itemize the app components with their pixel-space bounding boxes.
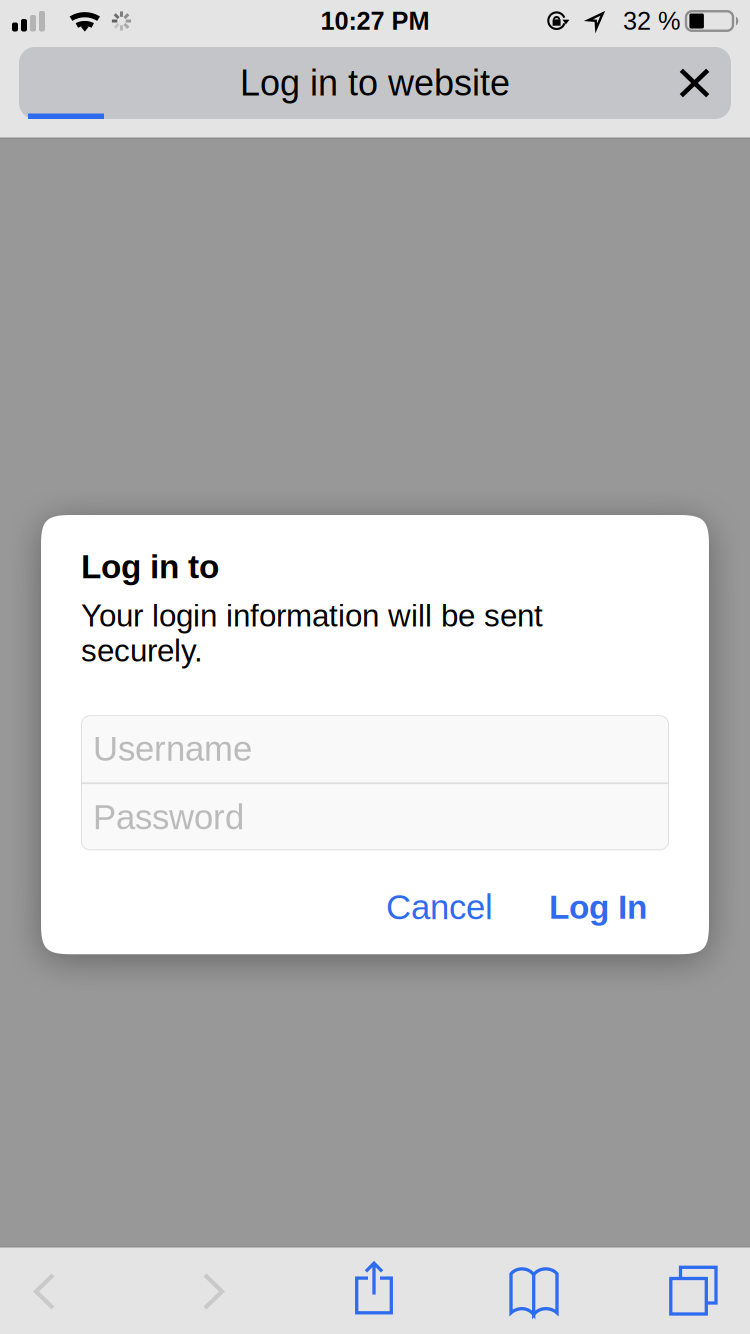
staticText: Cancel bbox=[386, 888, 493, 927]
button[interactable]: Forward bbox=[0, 1246, 750, 1334]
button[interactable]: Log in to website bbox=[0, 47, 750, 119]
button[interactable]: Tabs bbox=[0, 1246, 750, 1334]
staticText: 32 % bbox=[623, 7, 681, 35]
staticText: Log in to website bbox=[240, 63, 510, 103]
button[interactable]: Back bbox=[0, 1246, 750, 1334]
staticText: Log In bbox=[549, 889, 647, 926]
staticText: Your login information will be sent secu… bbox=[81, 598, 543, 668]
staticText: Log in to bbox=[81, 548, 219, 585]
button[interactable]: Share bbox=[0, 1246, 750, 1334]
button[interactable]: Cancel bbox=[364, 888, 527, 927]
staticText: Username bbox=[93, 729, 252, 768]
staticText: 10:27 PM bbox=[320, 7, 429, 35]
staticText: Password bbox=[93, 798, 244, 836]
button[interactable]: Bookmarks bbox=[0, 1246, 750, 1334]
button[interactable]: Log In bbox=[527, 889, 669, 926]
